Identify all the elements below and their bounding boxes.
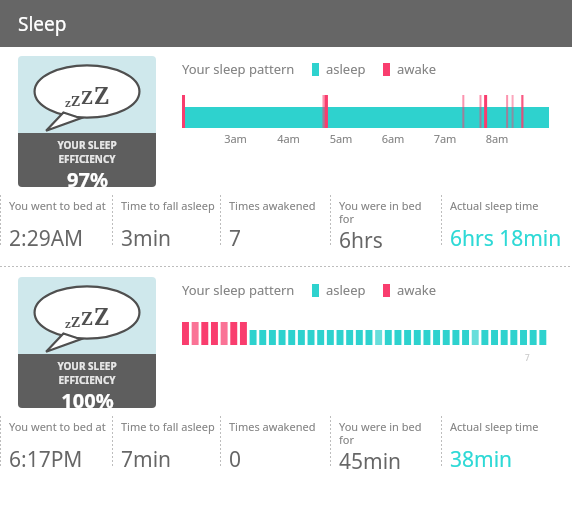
button[interactable]: Sleep — [18, 277, 156, 408]
staticText: 100% — [61, 387, 114, 408]
staticText: Z — [81, 85, 94, 110]
staticText: 6:17PM — [9, 445, 83, 474]
button[interactable]: Sleep — [0, 0, 572, 47]
staticText: Z — [71, 312, 81, 331]
button[interactable]: Sleep — [18, 56, 156, 187]
staticText: Your sleep pattern — [182, 281, 295, 299]
staticText: 45min — [339, 447, 402, 476]
staticText: 7min — [121, 445, 172, 474]
staticText: 7 — [525, 352, 549, 363]
staticText: 7 — [229, 224, 242, 253]
staticText: 7am — [419, 131, 471, 146]
staticText: You were in bed for — [339, 198, 439, 226]
staticText: You were in bed for — [339, 419, 439, 447]
staticText: Sleep — [18, 11, 67, 37]
staticText: awake — [397, 281, 437, 299]
staticText: Time to fall asleep — [121, 419, 215, 434]
staticText: 2:29AM — [9, 224, 84, 253]
staticText: 6hrs 31min — [339, 226, 439, 255]
other: Sleep — [18, 277, 156, 354]
staticText: Your sleep pattern — [182, 60, 295, 78]
staticText: 6hrs 18min — [450, 224, 562, 253]
staticText: Actual sleep time — [450, 419, 539, 434]
staticText: asleep — [326, 60, 366, 78]
staticText: Z — [94, 300, 110, 331]
staticText: awake — [397, 60, 437, 78]
staticText: z — [65, 95, 71, 110]
staticText: Z — [81, 306, 94, 331]
staticText: 97% — [67, 166, 108, 187]
staticText: 5am — [315, 131, 367, 146]
staticText: 4am — [262, 131, 315, 146]
staticText: 8am — [471, 131, 523, 146]
staticText: You went to bed at — [9, 198, 106, 213]
staticText: YOUR SLEEP — [57, 138, 117, 152]
staticText: Z — [94, 79, 110, 110]
staticText: 6am — [367, 131, 419, 146]
staticText: Time to fall asleep — [121, 198, 215, 213]
staticText: 3am — [209, 131, 262, 146]
staticText: 38min — [450, 445, 513, 474]
staticText: Times awakened — [229, 198, 316, 213]
staticText: asleep — [326, 281, 366, 299]
staticText: YOUR SLEEP — [57, 359, 117, 373]
staticText: EFFICIENCY — [58, 152, 116, 166]
staticText: Times awakened — [229, 419, 316, 434]
staticText: Actual sleep time — [450, 198, 539, 213]
staticText: EFFICIENCY — [58, 373, 116, 387]
staticText: Z — [71, 91, 81, 110]
staticText: 0 — [229, 445, 242, 474]
other: Sleep — [18, 56, 156, 133]
staticText: 3min — [121, 224, 172, 253]
staticText: You went to bed at — [9, 419, 106, 434]
staticText: z — [65, 316, 71, 331]
